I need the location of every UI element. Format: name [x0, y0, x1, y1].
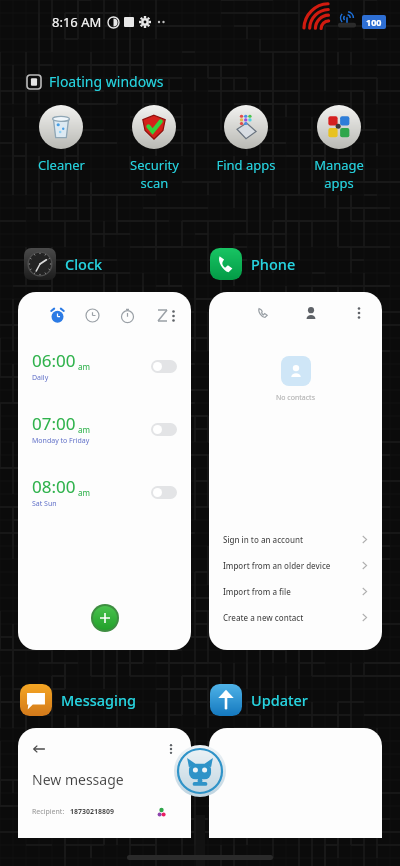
staticText: Messaging	[61, 690, 137, 710]
other: Dial	[256, 306, 270, 320]
button[interactable]: 06:00	[32, 349, 177, 383]
staticText: Cleaner	[38, 156, 85, 174]
button[interactable]: Messaging	[20, 684, 137, 716]
staticText: 18730218809	[70, 807, 115, 817]
staticText: Sat Sun	[32, 499, 57, 509]
staticText: 07:00	[32, 412, 76, 435]
staticText: Manage apps	[314, 156, 364, 192]
staticText: 100	[366, 16, 382, 28]
staticText: Security scan	[130, 156, 179, 192]
button[interactable]: Updater	[210, 684, 308, 716]
button[interactable]: Dial	[209, 292, 382, 650]
button[interactable]: Assistant	[174, 745, 226, 797]
staticText: Daily	[32, 373, 49, 383]
staticText: am	[78, 424, 90, 435]
button[interactable]: Toggle alarm 06:00	[151, 360, 177, 373]
staticText: New message	[32, 770, 124, 789]
staticText: Import from a file	[223, 586, 291, 597]
staticText: am	[78, 361, 90, 372]
staticText: No contacts	[276, 393, 315, 403]
button[interactable]: Sign in to an account	[223, 526, 368, 552]
staticText: Floating windows	[49, 72, 164, 91]
other: More options	[165, 743, 177, 755]
button[interactable]: Back	[18, 728, 191, 838]
button[interactable]: Clock	[24, 248, 103, 280]
staticText: Updater	[251, 690, 308, 710]
staticText: Recipient:	[32, 807, 65, 817]
other: Add contact	[157, 807, 167, 817]
button[interactable]: Floating windows	[27, 72, 400, 91]
button[interactable]: Toggle alarm 07:00	[151, 423, 177, 436]
button[interactable]: Import from a file	[223, 578, 368, 604]
staticText: Phone	[251, 254, 296, 274]
button[interactable]: Cleaner	[18, 105, 104, 174]
staticText: 06:00	[32, 349, 76, 372]
button[interactable]: Find apps	[203, 105, 289, 174]
staticText: Create a new contact	[223, 612, 304, 623]
button[interactable]: 08:00	[32, 475, 177, 509]
button[interactable]: Security scan	[111, 105, 197, 192]
staticText: 8:16 AM	[52, 13, 102, 31]
staticText: 08:00	[32, 475, 76, 498]
button[interactable]: Toggle alarm 08:00	[151, 486, 177, 499]
button[interactable]: Phone	[210, 248, 296, 280]
staticText: Monday to Friday	[32, 436, 90, 446]
other: Back	[32, 742, 46, 756]
staticText: Clock	[65, 254, 103, 274]
staticText: Find apps	[216, 156, 276, 174]
other: Contacts	[304, 306, 318, 320]
button[interactable]: Manage apps	[296, 105, 382, 192]
button[interactable]: Add alarm	[93, 606, 117, 630]
button[interactable]: 07:00	[32, 412, 177, 446]
staticText: Sign in to an account	[223, 534, 303, 545]
staticText: Import from an older device	[223, 560, 331, 571]
staticText: am	[78, 487, 90, 498]
button[interactable]	[209, 728, 382, 838]
button[interactable]: Import from an older device	[223, 552, 368, 578]
other: More options	[352, 306, 366, 320]
button[interactable]: 06:00	[18, 292, 191, 650]
button[interactable]: Create a new contact	[223, 604, 368, 630]
